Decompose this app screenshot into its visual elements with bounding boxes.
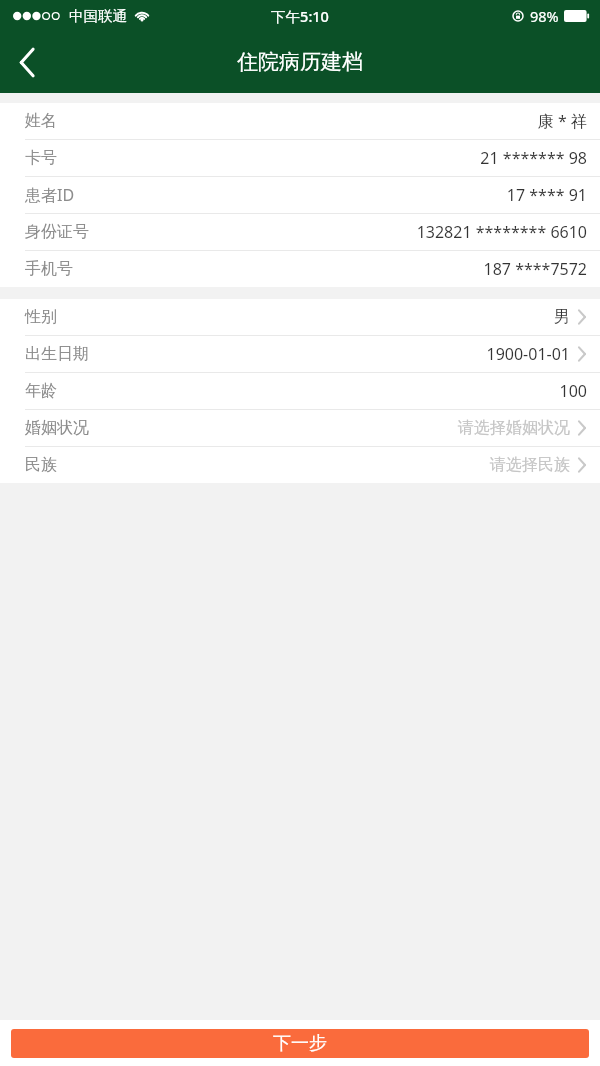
button[interactable]: 性别: [0, 299, 600, 335]
button[interactable]: 民族: [0, 447, 600, 483]
staticText: 身份证号: [25, 222, 89, 242]
staticText: 姓名: [25, 111, 57, 131]
button[interactable]: Back: [0, 31, 54, 93]
staticText: 请选择民族: [490, 455, 570, 475]
staticText: 患者ID: [25, 184, 75, 206]
staticText: 住院病历建档: [237, 49, 363, 75]
staticText: 民族: [25, 455, 57, 475]
staticText: 下一步: [273, 1032, 327, 1055]
staticText: 98%: [530, 6, 559, 26]
staticText: 17 **** 91: [506, 184, 587, 206]
staticText: 21 ******* 98: [480, 147, 587, 169]
button[interactable]: 出生日期: [0, 336, 600, 372]
staticText: 1900-01-01: [486, 343, 570, 365]
staticText: 187 ****7572: [483, 258, 587, 280]
staticText: 下午5:10: [271, 6, 329, 26]
button[interactable]: 婚姻状况: [0, 410, 600, 446]
button[interactable]: 下一步: [11, 1029, 589, 1058]
staticText: 132821 ******** 6610: [416, 221, 587, 243]
staticText: 100: [559, 380, 587, 402]
staticText: 婚姻状况: [25, 418, 89, 438]
staticText: 性别: [25, 307, 57, 327]
staticText: 年龄: [25, 381, 57, 401]
staticText: 男: [554, 307, 570, 327]
staticText: 手机号: [25, 259, 73, 279]
staticText: 卡号: [25, 148, 57, 168]
staticText: 康 * 祥: [537, 110, 587, 132]
staticText: 中国联通: [69, 7, 127, 25]
staticText: 请选择婚姻状况: [458, 418, 570, 438]
staticText: 出生日期: [25, 344, 89, 364]
